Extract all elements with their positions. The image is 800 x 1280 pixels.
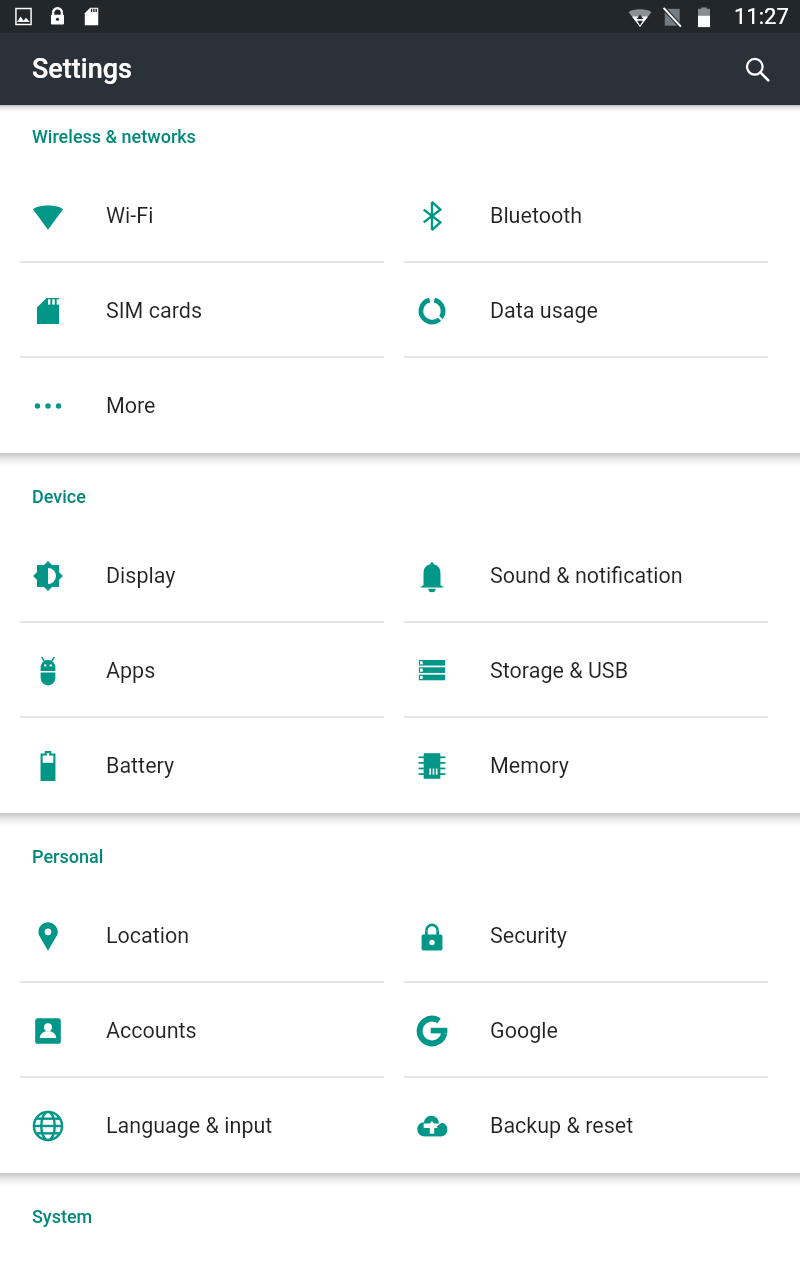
staticText: Apps: [106, 658, 156, 683]
staticText: Accounts: [106, 1018, 197, 1043]
staticText: Google: [490, 1018, 558, 1043]
staticText: Security: [490, 923, 567, 948]
staticText: 11:27: [734, 4, 789, 30]
button[interactable]: Security: [384, 888, 768, 983]
staticText: More: [106, 393, 156, 418]
button[interactable]: Location: [0, 888, 384, 983]
button[interactable]: More: [0, 358, 384, 453]
staticText: SIM cards: [106, 298, 202, 323]
staticText: Wi-Fi: [106, 203, 154, 228]
staticText: Display: [106, 563, 176, 588]
button[interactable]: Battery: [0, 718, 384, 813]
staticText: Data usage: [490, 298, 598, 323]
staticText: Device: [32, 486, 86, 507]
staticText: Battery: [106, 753, 175, 778]
button[interactable]: Search: [729, 41, 785, 97]
staticText: Location: [106, 923, 190, 948]
staticText: Storage & USB: [490, 658, 629, 683]
button[interactable]: Language & input: [0, 1078, 384, 1173]
button[interactable]: Apps: [0, 623, 384, 718]
staticText: Sound & notification: [490, 563, 683, 588]
button[interactable]: Backup & reset: [384, 1078, 768, 1173]
button[interactable]: SIM cards: [0, 263, 384, 358]
staticText: Language & input: [106, 1113, 273, 1138]
button[interactable]: Sound & notification: [384, 528, 768, 623]
staticText: Personal: [32, 846, 104, 867]
button[interactable]: Bluetooth: [384, 168, 768, 263]
staticText: Settings: [32, 53, 132, 85]
staticText: Backup & reset: [490, 1113, 634, 1138]
staticText: Wireless & networks: [32, 126, 196, 147]
button[interactable]: Google: [384, 983, 768, 1078]
button[interactable]: Memory: [384, 718, 768, 813]
staticText: Memory: [490, 753, 569, 778]
button[interactable]: Wi-Fi: [0, 168, 384, 263]
button[interactable]: Data usage: [384, 263, 768, 358]
staticText: Bluetooth: [490, 203, 583, 228]
button[interactable]: Accounts: [0, 983, 384, 1078]
button[interactable]: Storage & USB: [384, 623, 768, 718]
button[interactable]: Display: [0, 528, 384, 623]
staticText: System: [32, 1206, 93, 1227]
